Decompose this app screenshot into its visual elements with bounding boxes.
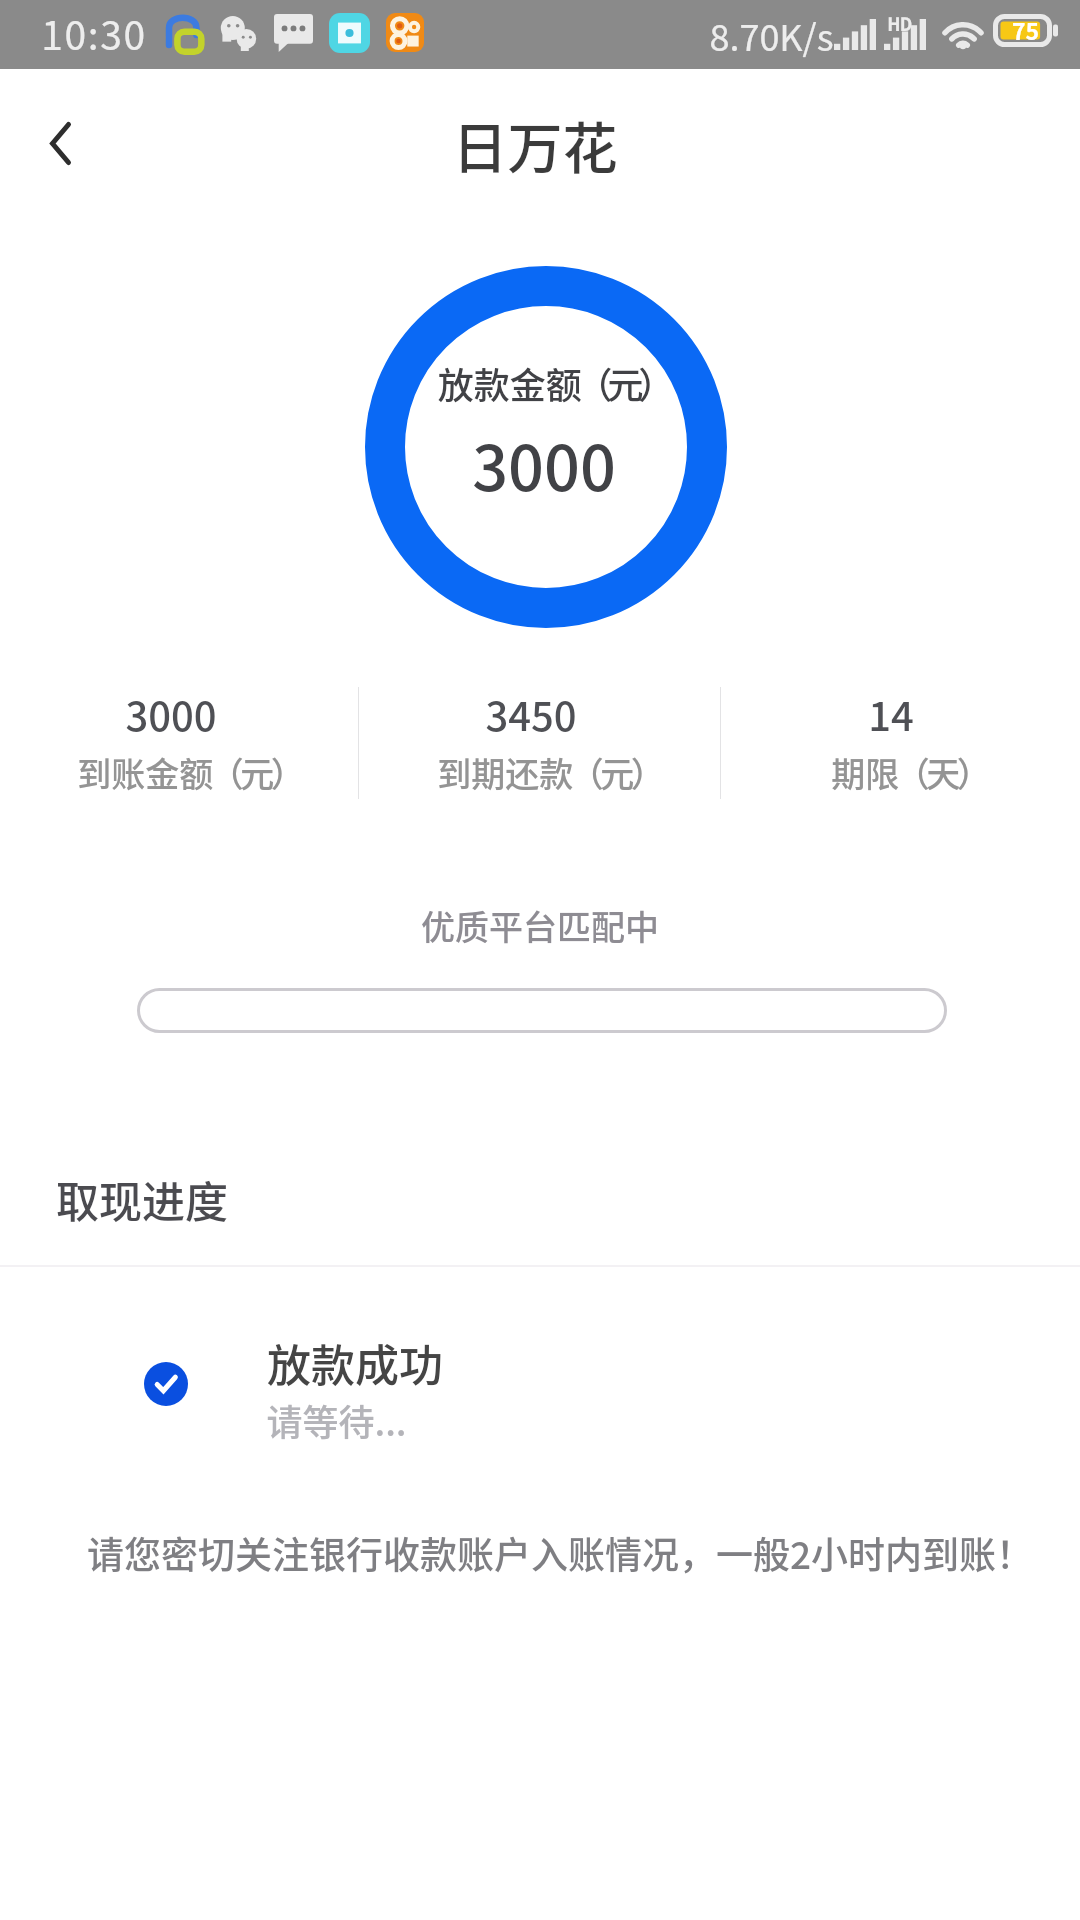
staticText: 3450 [485,685,577,743]
staticText: 8.70K/s [709,9,834,61]
staticText: 请等待... [266,1394,407,1446]
staticText: 14 [868,685,914,743]
button[interactable]: Back [5,88,115,198]
staticText: 75 [992,13,1059,46]
staticText: 到账金额（元） [77,748,305,797]
staticText: 放款成功 [267,1331,443,1395]
staticText: 3000 [4,418,1080,509]
staticText: 期限（天） [831,748,991,797]
staticText: 请您密切关注银行收款账户入账情况，一般2小时内到账！ [20,1526,1080,1580]
button[interactable]: 放款成功 [0,1300,1080,1460]
staticText: 到期还款（元） [437,748,665,797]
staticText: 10:30 [41,5,147,61]
staticText: 3000 [125,685,217,743]
staticText: 取现进度 [56,1168,228,1230]
staticText: 放款金额（元） [16,357,1080,409]
staticText: 优质平台匹配中 [0,901,1080,950]
staticText: 日万花 [452,104,618,184]
staticText: HD [887,11,912,36]
